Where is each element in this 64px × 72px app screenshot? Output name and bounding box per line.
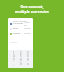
staticText: US Dollar — [13, 22, 24, 25]
button[interactable]: Euro — [8, 26, 33, 31]
staticText: 8 — [20, 58, 22, 62]
button[interactable]: 8 — [17, 58, 24, 62]
button[interactable]: Pound — [8, 31, 33, 36]
button[interactable]: 9 — [24, 58, 31, 62]
staticText: 9 — [27, 58, 29, 62]
button[interactable]: 2 — [17, 51, 24, 54]
button[interactable]: 3 — [24, 51, 31, 54]
staticText: x — [27, 62, 29, 66]
staticText: 2 — [20, 51, 22, 54]
staticText: 6 — [27, 54, 29, 58]
button[interactable]: x — [24, 62, 31, 66]
staticText: 820.50 — [24, 27, 31, 30]
button[interactable]: , — [10, 62, 17, 66]
button[interactable]: 1 — [10, 51, 17, 54]
staticText: 1,240.00 — [24, 21, 31, 26]
staticText: 0 — [20, 62, 22, 66]
staticText: 1 — [13, 51, 15, 54]
staticText: 340.00 — [24, 32, 31, 35]
staticText: 4 — [13, 54, 15, 58]
button[interactable]: 6 — [24, 54, 31, 58]
staticText: Pound — [13, 32, 21, 35]
staticText: 5 — [20, 54, 22, 58]
button[interactable]: US Dollar — [8, 21, 33, 26]
staticText: Euro — [13, 27, 18, 30]
button[interactable]: 4 — [10, 54, 17, 58]
button[interactable]: 5 — [17, 54, 24, 58]
staticText: , — [13, 62, 14, 66]
staticText: One account, — [20, 4, 44, 9]
staticText: 7 — [13, 58, 15, 62]
button[interactable]: 7 — [10, 58, 17, 62]
button[interactable]: 0 — [17, 62, 24, 66]
staticText: Send money — [13, 19, 27, 22]
staticText: multiple currencies — [15, 9, 49, 14]
